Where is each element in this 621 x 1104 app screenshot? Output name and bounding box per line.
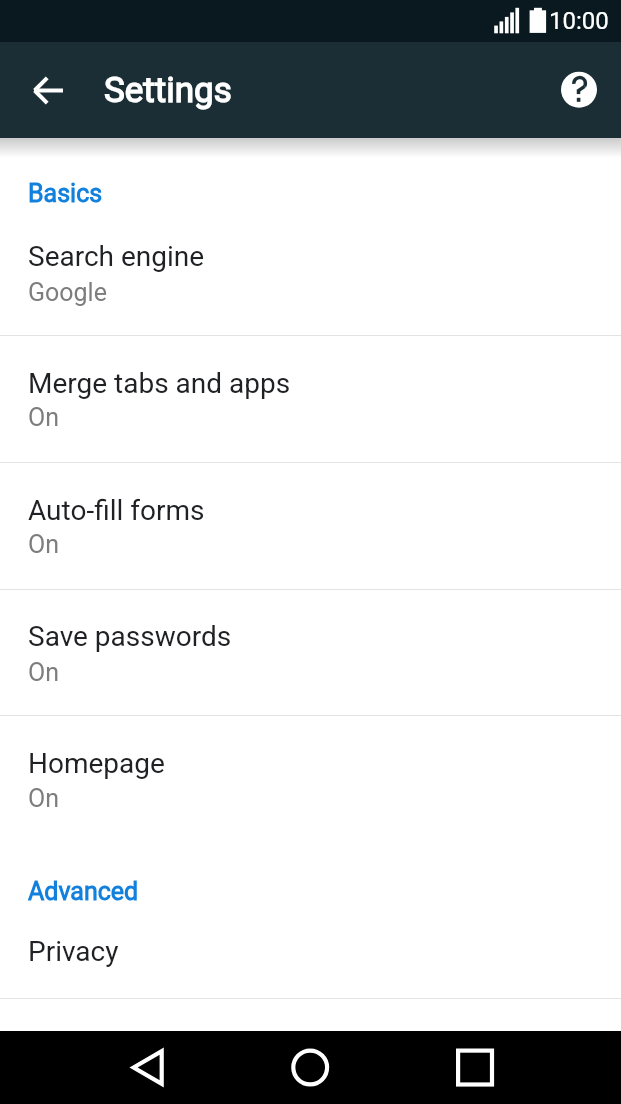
button[interactable]: Home [207,1031,414,1104]
staticText: Search engine [28,240,205,273]
button[interactable]: Recent apps [414,1031,621,1104]
staticText: Auto-fill forms [28,494,205,527]
button[interactable]: Save passwords [0,590,621,715]
button[interactable]: Navigate up [17,59,79,121]
staticText: Merge tabs and apps [28,367,291,400]
button[interactable]: Merge tabs and apps [0,336,621,462]
button[interactable]: Privacy [0,906,621,998]
staticText: Save passwords [28,620,232,653]
button[interactable]: Help [551,62,607,118]
button[interactable]: Back [0,1031,207,1104]
button[interactable]: Auto-fill forms [0,463,621,589]
staticText: On [28,784,60,813]
button[interactable]: Homepage [0,716,621,877]
staticText: Basics [28,179,103,208]
staticText: On [28,658,60,687]
staticText: Google [28,278,107,307]
staticText: On [28,403,60,432]
staticText: Advanced [28,877,139,906]
staticText: Privacy [28,935,119,968]
button[interactable]: Search engine [0,208,621,335]
staticText: Settings [104,70,232,111]
staticText: 10:00 [549,7,609,35]
staticText: Homepage [28,747,165,780]
staticText: On [28,530,60,559]
